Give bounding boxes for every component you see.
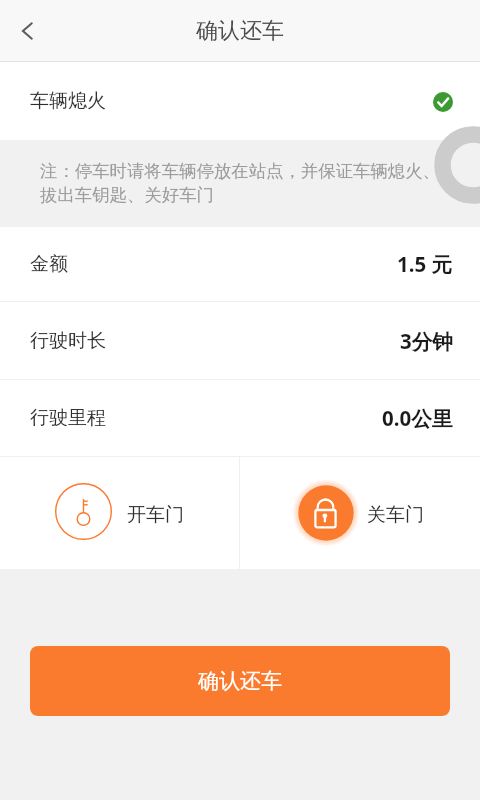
button[interactable]: 行驶时长 (0, 302, 480, 379)
staticText: 拔出车钥匙、关好车门 (40, 184, 214, 206)
staticText: 确认还车 (198, 668, 282, 694)
staticText: 金额 (30, 252, 68, 276)
staticText: 1.5 元 (397, 250, 453, 278)
staticText: 车辆熄火 (30, 89, 106, 113)
button[interactable]: 开车门 (0, 457, 239, 569)
staticText: 3分钟 (400, 327, 453, 355)
staticText: 0.0公里 (382, 404, 453, 432)
button[interactable]: 确认还车 (30, 646, 450, 716)
button[interactable]: 关车门 (240, 457, 480, 569)
button[interactable]: Back (3, 7, 51, 55)
button[interactable]: 金额 (0, 227, 480, 301)
staticText: 行驶时长 (30, 329, 106, 353)
staticText: 开车门 (127, 503, 184, 527)
staticText: 关车门 (367, 503, 424, 527)
staticText: 注：停车时请将车辆停放在站点，并保证车辆熄火、 (40, 160, 440, 182)
button[interactable]: 车辆熄火 (0, 62, 480, 140)
staticText: 确认还车 (196, 17, 284, 45)
staticText: 行驶里程 (30, 406, 106, 430)
button[interactable]: 行驶里程 (0, 380, 480, 456)
